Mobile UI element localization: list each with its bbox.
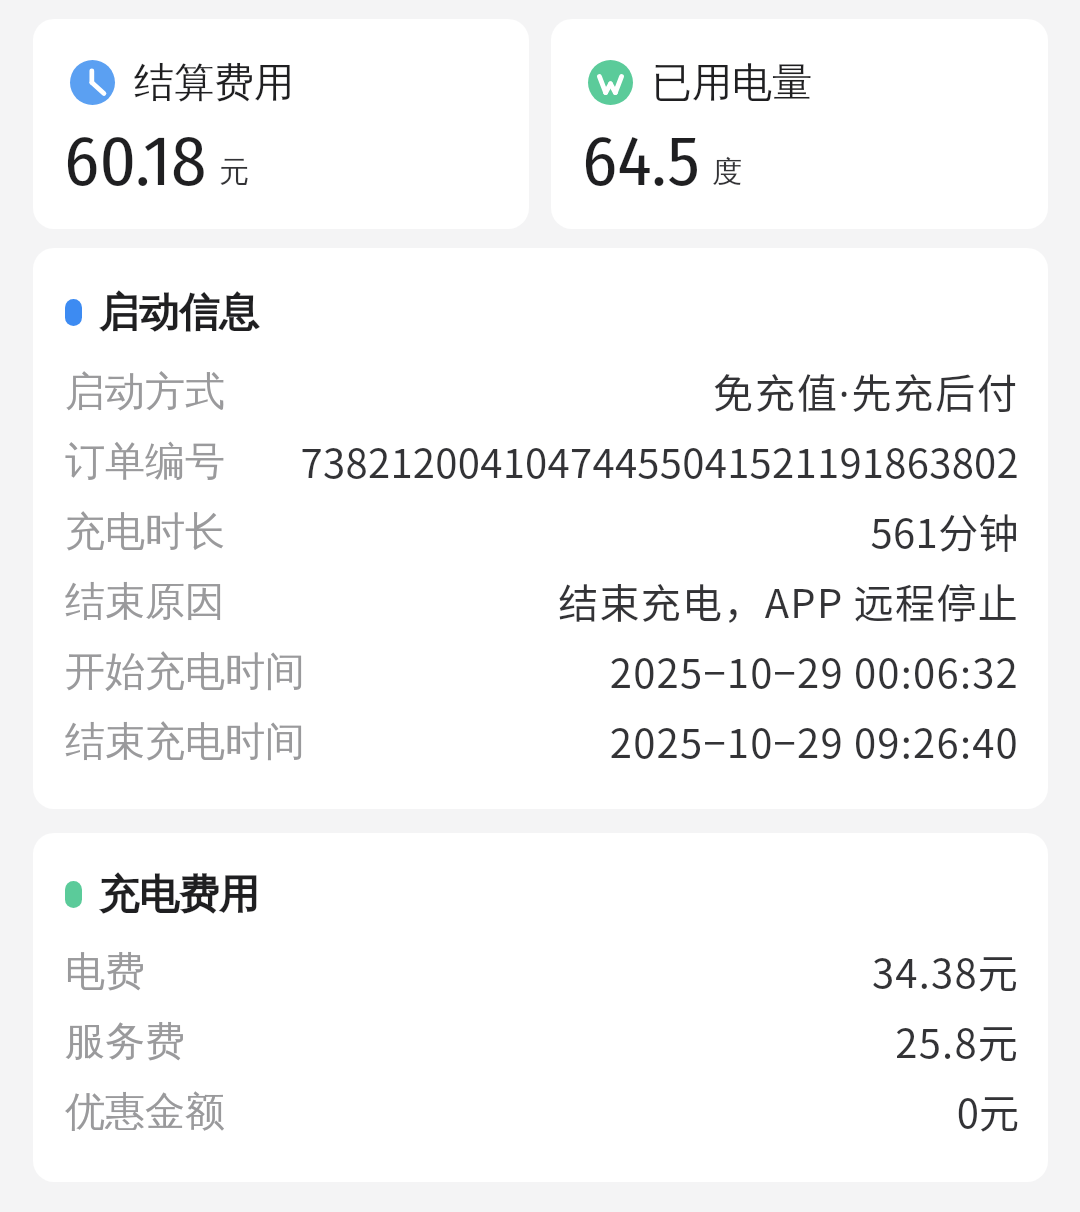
button[interactable]: Clock bbox=[33, 19, 529, 229]
staticText: 服务费 bbox=[65, 1016, 185, 1066]
button[interactable]: 优惠金额 bbox=[65, 1076, 1019, 1146]
button[interactable]: 订单编号 bbox=[65, 426, 1019, 496]
other: Electricity used bbox=[588, 60, 633, 105]
button[interactable]: 启动方式 bbox=[65, 356, 1019, 426]
staticText: 启动信息 bbox=[99, 287, 259, 337]
staticText: 0元 bbox=[245, 1082, 1019, 1140]
staticText: 2025−10−29 09:26:40 bbox=[325, 712, 1019, 770]
button[interactable]: Electricity used bbox=[551, 19, 1048, 229]
button[interactable]: 开始充电时间 bbox=[65, 636, 1019, 706]
staticText: 60.18 bbox=[64, 119, 207, 204]
staticText: 73821200410474455041521191863802 bbox=[245, 432, 1019, 490]
button[interactable]: 服务费 bbox=[65, 1006, 1019, 1076]
staticText: 结束充电，APP 远程停止 bbox=[245, 572, 1019, 630]
staticText: 免充值·先充后付 bbox=[245, 362, 1019, 420]
staticText: 结算费用 bbox=[134, 57, 294, 107]
other: Clock bbox=[70, 60, 115, 105]
staticText: 电费 bbox=[65, 946, 145, 996]
button[interactable]: 结束充电时间 bbox=[65, 706, 1019, 776]
staticText: 结束充电时间 bbox=[65, 716, 305, 766]
staticText: 2025−10−29 00:06:32 bbox=[325, 642, 1019, 700]
button[interactable]: 电费 bbox=[65, 936, 1019, 1006]
staticText: 64.5 bbox=[582, 119, 700, 204]
button[interactable]: 结束原因 bbox=[65, 566, 1019, 636]
staticText: 元 bbox=[219, 153, 249, 191]
staticText: 优惠金额 bbox=[65, 1086, 225, 1136]
staticText: 订单编号 bbox=[65, 436, 225, 486]
button[interactable]: 充电时长 bbox=[65, 496, 1019, 566]
staticText: 25.8元 bbox=[205, 1012, 1019, 1070]
staticText: 34.38元 bbox=[165, 942, 1019, 1000]
staticText: 充电时长 bbox=[65, 506, 225, 556]
staticText: 结束原因 bbox=[65, 576, 225, 626]
staticText: 561分钟 bbox=[245, 502, 1019, 560]
staticText: 已用电量 bbox=[652, 57, 812, 107]
staticText: 度 bbox=[712, 153, 742, 191]
staticText: 启动方式 bbox=[65, 366, 225, 416]
staticText: 开始充电时间 bbox=[65, 646, 305, 696]
staticText: 充电费用 bbox=[99, 869, 259, 919]
